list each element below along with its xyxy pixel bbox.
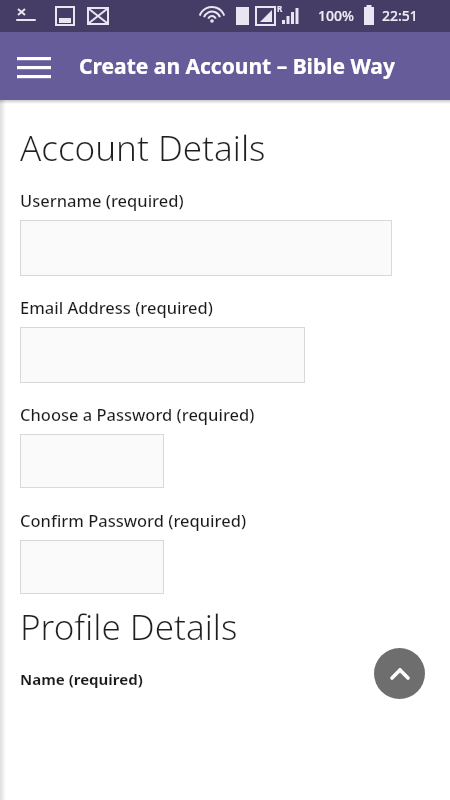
staticText: Create an Account – Bible Way: [79, 52, 395, 81]
staticText: Profile Details: [20, 603, 238, 651]
staticText: R: [277, 3, 283, 14]
staticText: Choose a Password (required): [20, 403, 255, 425]
staticText: 22:51: [382, 6, 418, 25]
button[interactable]: [20, 220, 392, 276]
staticText: 100%: [318, 6, 354, 25]
button[interactable]: [20, 540, 164, 594]
staticText: Confirm Password (required): [20, 509, 247, 531]
button[interactable]: Scroll to top: [374, 648, 425, 699]
staticText: Account Details: [20, 124, 266, 172]
button[interactable]: [20, 434, 164, 488]
staticText: Name (required): [20, 669, 143, 689]
button[interactable]: Open navigation menu: [10, 42, 58, 90]
staticText: Username (required): [20, 189, 184, 211]
button[interactable]: [20, 327, 305, 383]
staticText: Email Address (required): [20, 296, 213, 318]
